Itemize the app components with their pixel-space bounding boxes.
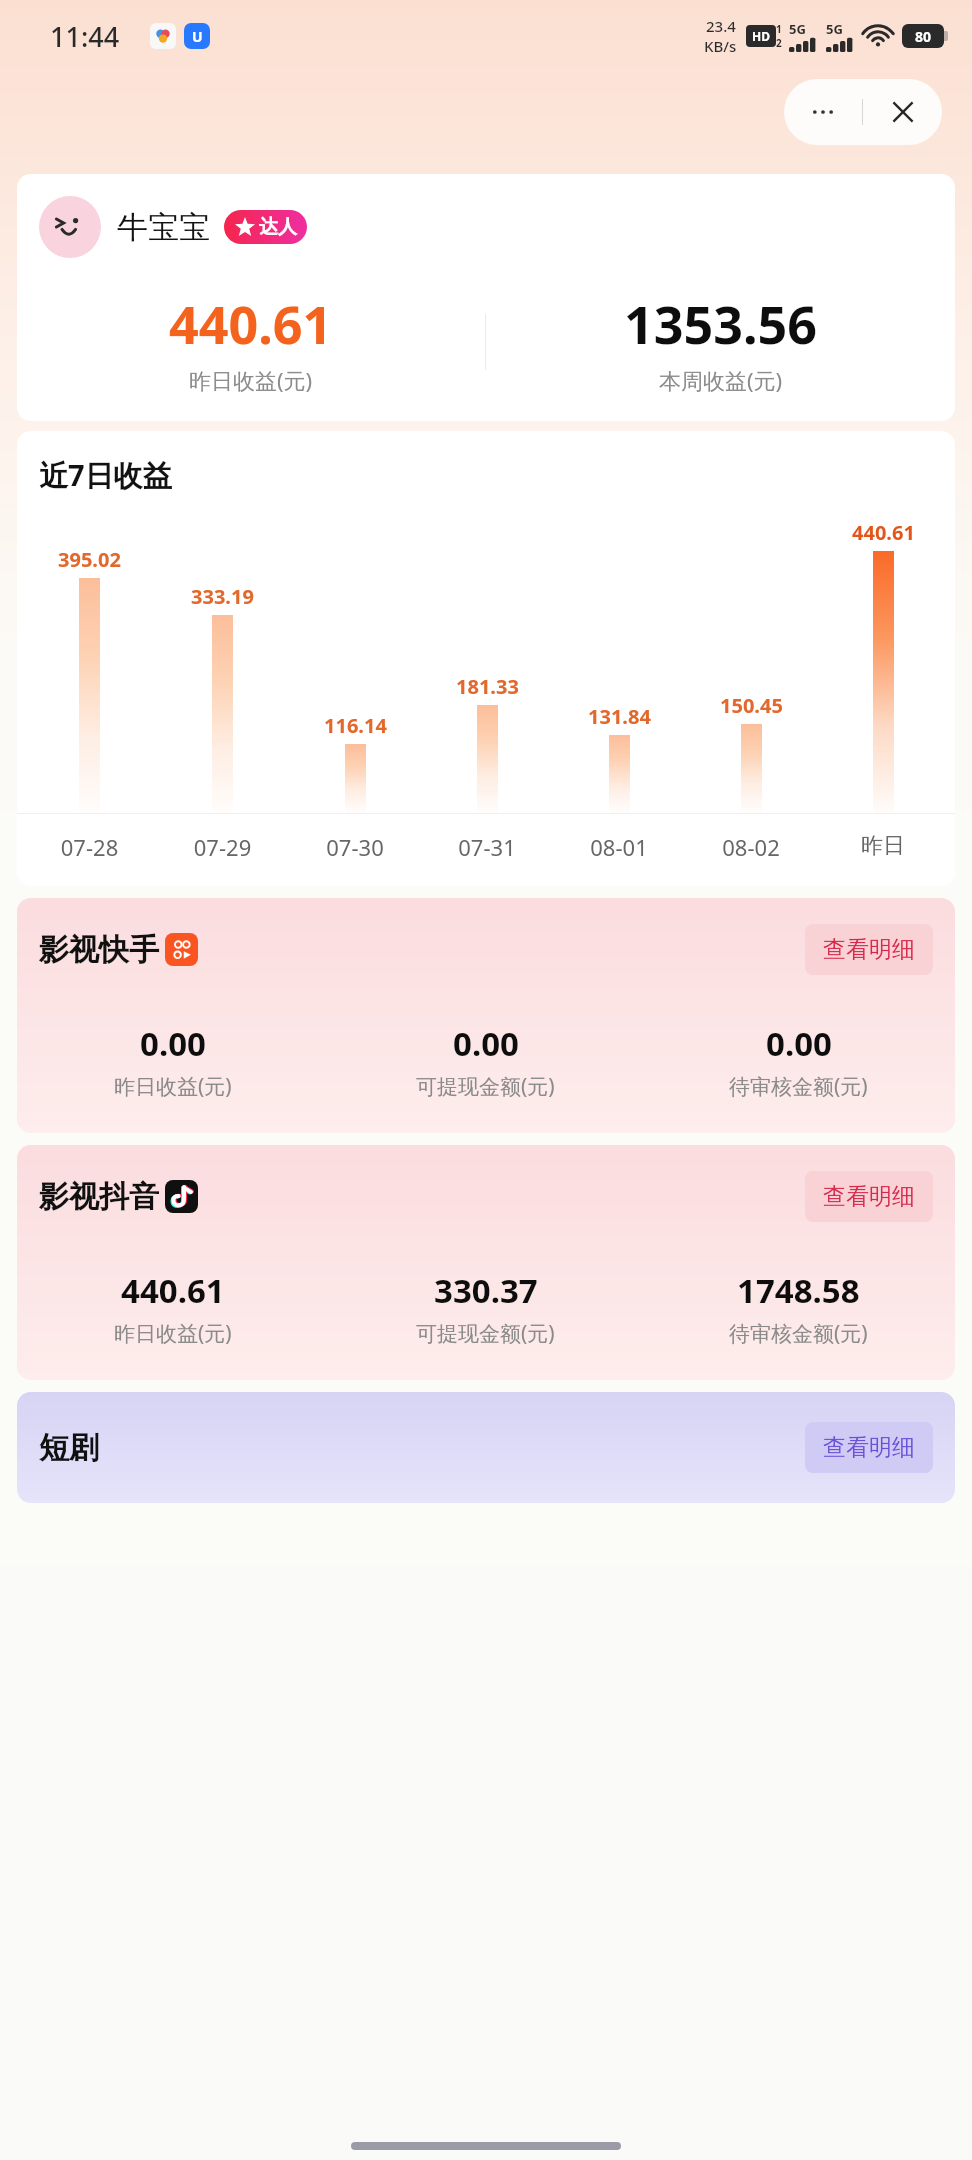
staticText: 查看明细 (823, 935, 915, 964)
staticText: 08-01 (553, 832, 685, 862)
staticText: 昨日收益(元) (114, 1072, 232, 1101)
button[interactable]: 达人 (234, 210, 297, 244)
button[interactable]: 影视快手 (17, 898, 955, 1133)
staticText: 2 (776, 36, 782, 50)
staticText: 181.33 (456, 673, 519, 700)
staticText: 影视快手 (39, 931, 159, 969)
staticText: 昨日收益(元) (189, 365, 313, 395)
staticText: 440.61 (852, 519, 915, 546)
staticText: 短剧 (39, 1429, 99, 1467)
staticText: 5G (826, 20, 843, 38)
staticText: 1 (776, 22, 782, 36)
staticText: 23.4 (706, 16, 736, 36)
staticText: 0.00 (140, 1021, 206, 1066)
button[interactable]: 查看明细 (805, 1422, 933, 1473)
staticText: 牛宝宝 (117, 208, 210, 247)
staticText: 07-29 (156, 832, 289, 862)
staticText: KB/s (704, 36, 737, 56)
staticText: 07-30 (289, 832, 421, 862)
staticText: 5G (789, 20, 806, 38)
staticText: U (192, 27, 203, 46)
staticText: 333.19 (191, 583, 254, 610)
staticText: 昨日收益(元) (114, 1319, 232, 1348)
staticText: 116.14 (324, 712, 387, 739)
staticText: 可提现金额(元) (416, 1072, 555, 1101)
staticText: 440.61 (169, 288, 333, 359)
staticText: 昨日 (817, 832, 949, 860)
staticText: 0.00 (453, 1021, 519, 1066)
staticText: 395.02 (58, 546, 121, 573)
staticText: 440.61 (121, 1268, 225, 1313)
staticText: 影视抖音 (39, 1178, 159, 1216)
staticText: 可提现金额(元) (416, 1319, 555, 1348)
staticText: 待审核金额(元) (729, 1319, 868, 1348)
button[interactable]: 短剧 (17, 1392, 955, 1503)
staticText: 0.00 (766, 1021, 832, 1066)
button[interactable]: 近7日收益 (17, 431, 955, 886)
staticText: HD (752, 28, 770, 44)
staticText: 查看明细 (823, 1433, 915, 1462)
staticText: 本周收益(元) (659, 365, 783, 395)
button[interactable]: Close (863, 79, 942, 145)
button[interactable]: 影视抖音 (17, 1145, 955, 1380)
staticText: 08-02 (685, 832, 817, 862)
button[interactable]: 查看明细 (805, 1171, 933, 1222)
staticText: 80 (915, 27, 932, 46)
staticText: 1353.56 (624, 288, 818, 359)
staticText: 131.84 (588, 703, 651, 730)
staticText: 查看明细 (823, 1182, 915, 1211)
button[interactable]: 牛宝宝 (17, 174, 955, 421)
staticText: 近7日收益 (39, 455, 172, 495)
staticText: 07-31 (421, 832, 553, 862)
staticText: 150.45 (720, 692, 783, 719)
button[interactable]: More options (784, 79, 862, 145)
staticText: 07-28 (23, 832, 156, 862)
staticText: 1748.58 (737, 1268, 860, 1313)
staticText: 待审核金额(元) (729, 1072, 868, 1101)
staticText: 11:44 (50, 18, 120, 55)
staticText: 达人 (259, 215, 297, 239)
staticText: 330.37 (434, 1268, 538, 1313)
button[interactable]: 查看明细 (805, 924, 933, 975)
